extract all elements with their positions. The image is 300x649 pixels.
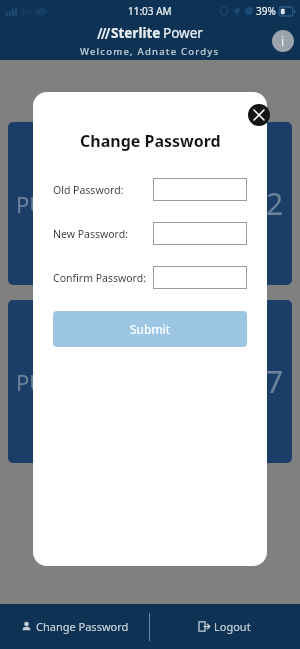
staticText: Confirm Password: xyxy=(53,271,146,285)
staticText: PU xyxy=(16,189,46,219)
button[interactable]: Close xyxy=(248,104,270,126)
staticText: 7 xyxy=(266,361,284,402)
button[interactable]: Change Password xyxy=(0,604,149,649)
staticText: 11:03 AM xyxy=(128,4,172,18)
staticText: Change Password xyxy=(36,619,129,634)
staticText: PU xyxy=(16,367,46,397)
button[interactable] xyxy=(153,222,247,245)
staticText: i xyxy=(281,33,285,49)
staticText: Jio xyxy=(22,5,33,17)
staticText: Old Password: xyxy=(53,183,124,197)
button[interactable]: PU xyxy=(8,122,292,285)
staticText: Welcome, Adnate Cordys xyxy=(80,45,220,58)
staticText: 39% xyxy=(256,4,276,18)
staticText: Sterlite xyxy=(111,24,161,42)
staticText: Logout xyxy=(214,619,251,634)
button[interactable]: Logout xyxy=(150,604,300,649)
staticText: Submit xyxy=(130,321,171,337)
staticText: 2 xyxy=(266,183,284,224)
button[interactable]: PU xyxy=(8,300,292,463)
staticText: Change Password xyxy=(80,130,221,152)
button[interactable] xyxy=(153,178,247,201)
staticText: Power xyxy=(163,24,203,42)
button[interactable]: Submit xyxy=(53,311,247,347)
button[interactable]: Information xyxy=(272,30,294,52)
button[interactable] xyxy=(153,266,247,289)
staticText: New Password: xyxy=(53,227,128,241)
